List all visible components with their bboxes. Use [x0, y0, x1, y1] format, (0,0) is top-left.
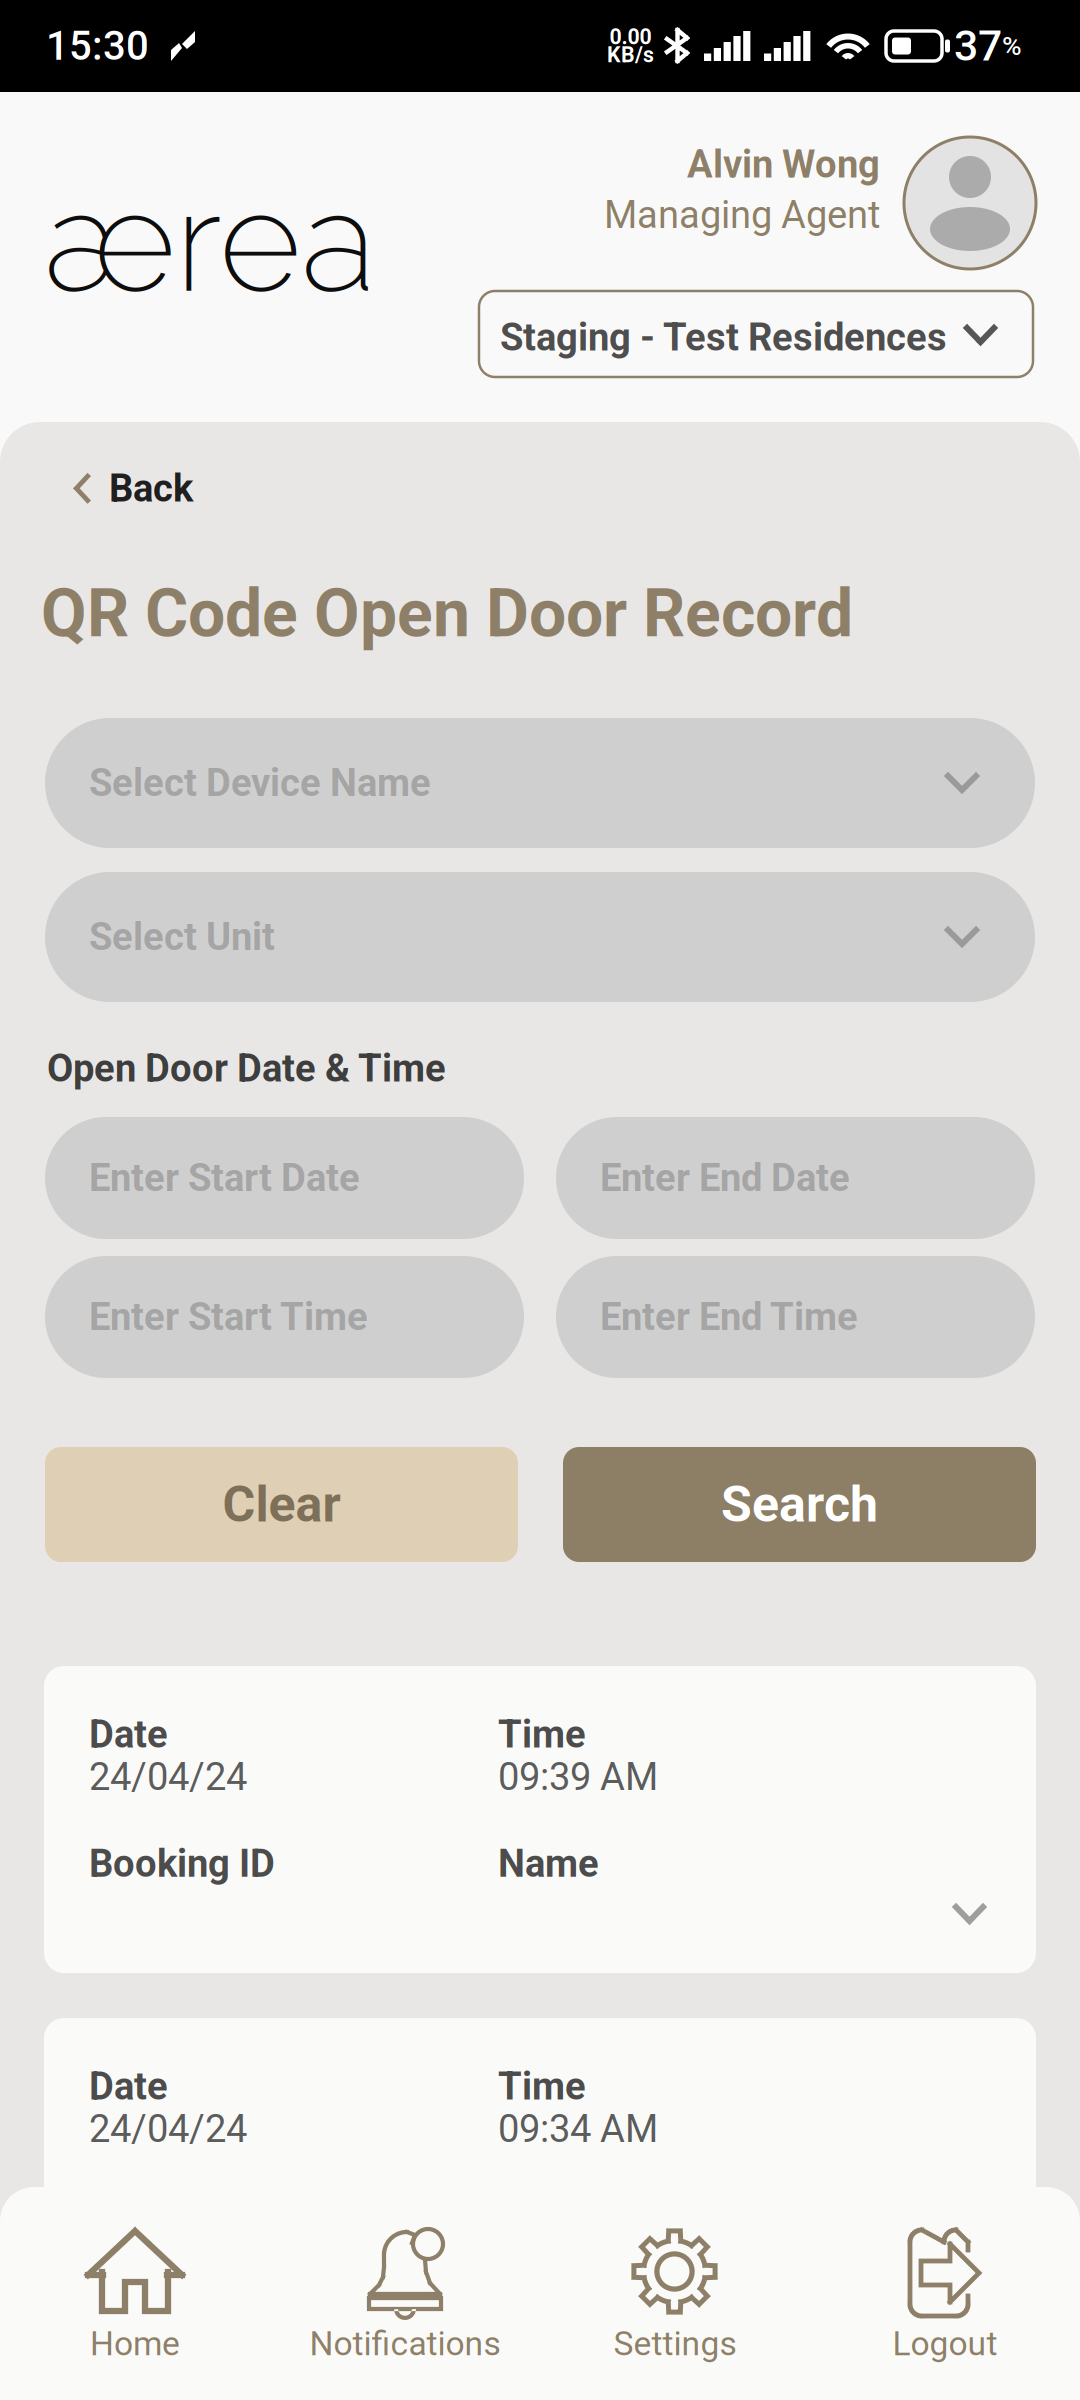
staticText: Enter Start Date: [89, 1156, 360, 1200]
staticText: 15:30: [46, 23, 149, 69]
staticText: Time: [498, 2064, 586, 2109]
staticText: Date: [89, 1712, 168, 1757]
button[interactable]: Enter End Time: [556, 1256, 1035, 1378]
staticText: 09:39 AM: [498, 1755, 658, 1799]
staticText: Logout: [892, 2324, 997, 2363]
staticText: 0.00: [609, 24, 651, 49]
staticText: Settings: [613, 2324, 736, 2363]
staticText: Date: [89, 2064, 168, 2109]
staticText: 24/04/24: [89, 1755, 247, 1799]
staticText: QR Code Open Door Record: [41, 575, 853, 652]
button[interactable]: Logout: [810, 2228, 1080, 2400]
staticText: 24/04/24: [89, 2107, 247, 2151]
staticText: Alvin Wong: [687, 142, 880, 187]
button[interactable]: Back: [60, 456, 207, 521]
staticText: Back: [109, 466, 193, 511]
staticText: Notifications: [309, 2324, 500, 2363]
staticText: ærea: [44, 158, 376, 324]
staticText: Enter End Date: [600, 1156, 850, 1200]
button[interactable]: Home: [0, 2228, 270, 2400]
staticText: Enter End Time: [600, 1295, 858, 1339]
staticText: Home: [90, 2324, 180, 2363]
staticText: Enter Start Time: [89, 1295, 368, 1339]
staticText: Name: [498, 1841, 599, 1886]
button[interactable]: Account: [904, 137, 1036, 269]
staticText: Booking ID: [89, 1841, 275, 1886]
staticText: 37: [954, 21, 1002, 71]
button[interactable]: Enter Start Date: [45, 1117, 524, 1239]
button[interactable]: Enter Start Time: [45, 1256, 524, 1378]
button[interactable]: Staging - Test Residences: [479, 291, 1033, 377]
staticText: Search: [721, 1475, 878, 1534]
staticText: Select Device Name: [89, 761, 431, 805]
button[interactable]: Search: [563, 1447, 1036, 1562]
button[interactable]: Notifications: [270, 2228, 540, 2400]
staticText: %: [1002, 30, 1022, 62]
staticText: Booking ID: [89, 2193, 275, 2238]
staticText: KB/s: [607, 42, 654, 67]
staticText: Open Door Date & Time: [47, 1046, 446, 1091]
staticText: Time: [498, 1712, 586, 1757]
button[interactable]: Select Unit: [45, 872, 1035, 1002]
button[interactable]: Clear: [45, 1447, 518, 1562]
button[interactable]: Select Device Name: [45, 718, 1035, 848]
staticText: Clear: [222, 1475, 340, 1534]
staticText: Staging - Test Residences: [500, 315, 947, 360]
staticText: Select Unit: [89, 915, 275, 959]
staticText: 09:34 AM: [498, 2107, 658, 2151]
staticText: Managing Agent: [604, 193, 880, 237]
button[interactable]: Settings: [540, 2228, 810, 2400]
button[interactable]: Enter End Date: [556, 1117, 1035, 1239]
